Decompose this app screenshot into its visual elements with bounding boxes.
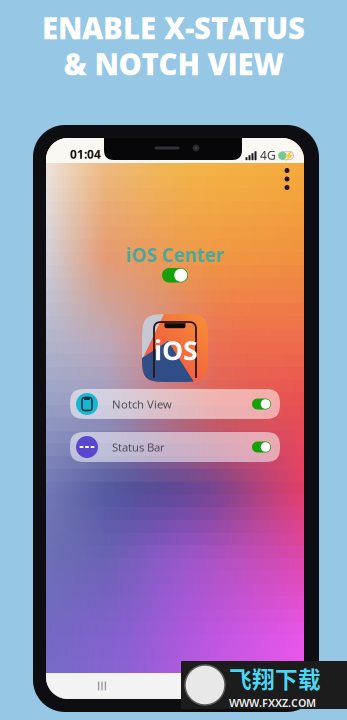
staticText: 4G [260, 147, 276, 163]
staticText: WWW.FXXZ.COM [229, 696, 316, 710]
staticText: ENABLE X-STATUS [42, 8, 305, 48]
button[interactable]: Toggle [252, 441, 271, 452]
button[interactable]: Toggle [252, 398, 271, 409]
staticText: 飞翔下载 [229, 662, 321, 695]
staticText: Status Bar [112, 439, 165, 455]
button[interactable]: Status Bar [70, 432, 280, 462]
button[interactable]: Toggle [162, 268, 188, 282]
staticText: iOS Center [126, 242, 224, 267]
button[interactable]: Home [220, 673, 266, 699]
staticText: 01:04 [70, 146, 101, 162]
staticText: Notch View [112, 396, 172, 412]
staticText: & NOTCH VIEW [63, 44, 283, 84]
staticText: ⚡ [283, 150, 295, 161]
button[interactable]: More options [274, 161, 300, 197]
staticText: iOS [154, 332, 198, 368]
button[interactable]: Notch View [70, 389, 280, 419]
button[interactable]: Recent apps [79, 673, 125, 699]
